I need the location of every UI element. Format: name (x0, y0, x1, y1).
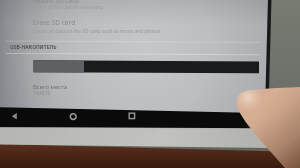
staticText: Erases all data on the SD card, such as … (33, 28, 161, 35)
staticText: Всего места (33, 83, 68, 91)
staticText: Insert an SD card for mounting (33, 4, 103, 11)
staticText: USB-НАКОПИТЕЛЬ (10, 44, 57, 51)
staticText: 14,40 Гб (33, 90, 51, 96)
staticText: Mount SD card (33, 0, 79, 5)
staticText: Erase SD card (33, 18, 76, 27)
